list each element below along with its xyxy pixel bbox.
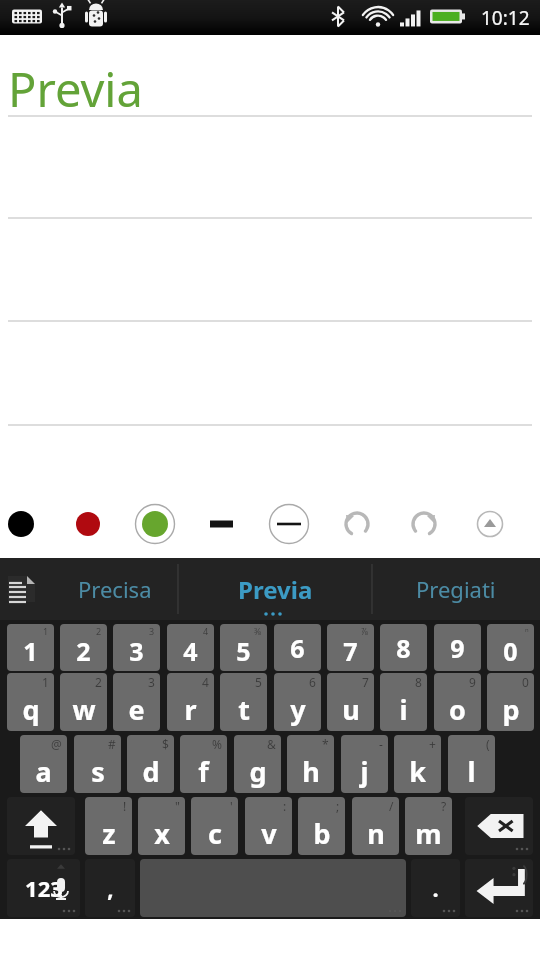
staticText: 1 [42,674,49,690]
staticText: 7 [343,634,358,668]
button[interactable]: 1 [7,624,54,671]
button[interactable]: Collapse toolbar [458,490,540,558]
button[interactable]: 5 [220,673,267,731]
button[interactable]: @ [20,735,67,793]
button[interactable]: ⅞ [327,624,374,671]
staticText: . [432,873,439,903]
button[interactable]: 0 [487,673,534,731]
staticText: 3 [148,674,155,690]
button[interactable]: * [287,735,334,793]
button[interactable]: 9 [434,624,481,671]
button[interactable]: 4 [167,624,214,671]
button[interactable]: Thick stroke [189,490,256,558]
staticText: Pregiati [416,574,496,604]
staticText: 1 [23,634,38,668]
button[interactable]: ' [191,797,238,855]
staticText: & [267,736,276,752]
staticText: c [208,815,222,852]
staticText: Previa [238,573,313,606]
staticText: 2 [76,634,91,668]
staticText: 6 [290,631,305,665]
staticText: / [389,798,394,814]
staticText: @ [51,736,62,752]
button[interactable]: ; [298,797,345,855]
button[interactable]: ⁿ [487,624,534,671]
staticText: 8 [415,674,422,690]
button[interactable]: 123 [7,859,80,917]
staticText: g [249,753,267,790]
button[interactable]: Pregiati [376,558,536,620]
button[interactable]: + [394,735,441,793]
staticText: m [415,815,442,852]
staticText: l [467,753,476,790]
staticText: 3 [129,634,144,668]
button[interactable]: 7 [327,673,374,731]
button[interactable]: Shift [7,797,75,855]
button[interactable]: " [138,797,185,855]
button[interactable]: . [411,859,460,917]
button[interactable]: 4 [167,673,214,731]
button[interactable]: / [352,797,399,855]
staticText: z [102,815,116,852]
staticText: ' [230,798,233,814]
button[interactable]: Previa [182,558,368,620]
staticText: Previa [8,57,143,121]
button[interactable]: Redo [391,490,458,558]
button[interactable]: - [341,735,388,793]
button[interactable]: 3 [113,673,160,731]
staticText: " [175,798,180,814]
staticText: f [198,753,209,790]
button[interactable]: ⅜ [220,624,267,671]
staticText: ? [441,798,447,814]
button[interactable]: Green colour [122,490,189,558]
staticText: 0 [522,674,529,690]
button[interactable]: 6 [274,624,321,671]
staticText: h [302,753,320,790]
staticText: 7 [362,674,369,690]
staticText: 0 [503,634,518,668]
button[interactable]: 2 [60,624,107,671]
staticText: ; [336,798,340,814]
staticText: * [322,736,329,752]
button[interactable]: : [245,797,292,855]
button[interactable]: ! [85,797,132,855]
button[interactable]: Red colour [55,490,122,558]
staticText: 4 [183,634,198,668]
button[interactable]: Black colour [0,490,55,558]
button[interactable]: # [74,735,121,793]
button[interactable]: 3 [113,624,160,671]
button[interactable]: Undo [324,490,391,558]
staticText: 10:12 [481,5,530,31]
staticText: r [184,691,197,728]
button[interactable]: 8 [380,673,427,731]
staticText: : [283,798,287,814]
button[interactable]: , [85,859,135,917]
staticText: t [238,691,250,728]
button[interactable]: % [180,735,227,793]
staticText: ( [486,736,490,752]
staticText: 2 [96,625,102,637]
staticText: d [142,753,160,790]
staticText: k [409,753,426,790]
button[interactable]: $ [127,735,174,793]
button[interactable]: Enter [465,859,533,917]
staticText: o [449,691,466,728]
staticText: j [360,753,369,790]
staticText: a [35,753,52,790]
button[interactable]: 8 [380,624,427,671]
staticText: ⅜ [254,625,262,637]
staticText: 123 [25,873,63,903]
button[interactable]: Backspace [465,797,533,855]
button[interactable]: 1 [7,673,54,731]
button[interactable]: 6 [274,673,321,731]
button[interactable]: ? [405,797,452,855]
button[interactable]: Precisa [52,558,178,620]
staticText: Precisa [78,574,152,604]
button[interactable]: ( [448,735,495,793]
button[interactable]: & [234,735,281,793]
button[interactable]: Thin stroke [256,490,324,558]
staticText: 2 [95,674,102,690]
button[interactable]: 9 [434,673,481,731]
button[interactable]: 2 [60,673,107,731]
